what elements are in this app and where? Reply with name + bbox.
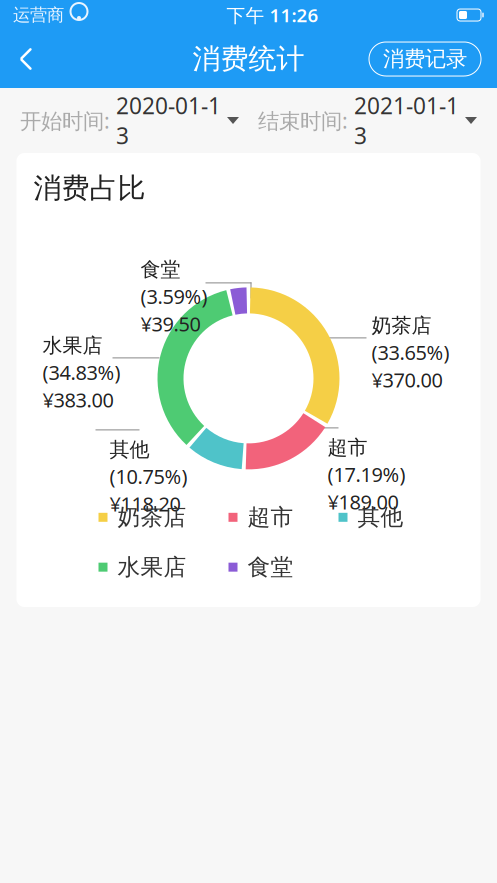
button[interactable]: 返回 xyxy=(0,33,52,85)
staticText: 食堂 xyxy=(247,553,293,581)
staticText: 消费统计 xyxy=(192,42,304,76)
staticText: 超市 xyxy=(247,503,293,531)
staticText: 运营商 xyxy=(13,4,64,26)
staticText: ¥189.00 xyxy=(327,488,398,515)
button[interactable]: 结束时间: xyxy=(258,90,477,151)
staticText: 消费占比 xyxy=(33,171,145,205)
staticText: ¥118.20 xyxy=(109,490,180,517)
staticText: 食堂 xyxy=(140,257,180,282)
staticText: 下午 11:26 xyxy=(226,3,318,27)
staticText: 2020-01-13 xyxy=(116,90,221,151)
staticText: 其他 xyxy=(357,503,403,531)
staticText: (34.83%) xyxy=(42,359,120,386)
button[interactable]: 开始时间: xyxy=(20,90,239,151)
button[interactable]: 消费记录 xyxy=(369,42,481,76)
staticText: 奶茶店 xyxy=(371,313,431,338)
staticText: 2021-01-13 xyxy=(354,90,459,151)
staticText: 水果店 xyxy=(117,553,186,581)
staticText: 其他 xyxy=(109,437,149,462)
staticText: 消费记录 xyxy=(383,46,467,72)
staticText: ¥383.00 xyxy=(42,386,113,413)
staticText: (10.75%) xyxy=(109,463,187,490)
staticText: (17.19%) xyxy=(327,461,405,488)
staticText: 结束时间: xyxy=(258,106,348,135)
staticText: 奶茶店 xyxy=(117,503,186,531)
staticText: 开始时间: xyxy=(20,106,110,135)
staticText: ¥370.00 xyxy=(371,366,442,393)
staticText: ¥39.50 xyxy=(140,310,200,337)
staticText: (33.65%) xyxy=(371,339,449,366)
staticText: 超市 xyxy=(327,435,367,460)
staticText: 水果店 xyxy=(42,333,102,358)
staticText: (3.59%) xyxy=(140,283,207,310)
